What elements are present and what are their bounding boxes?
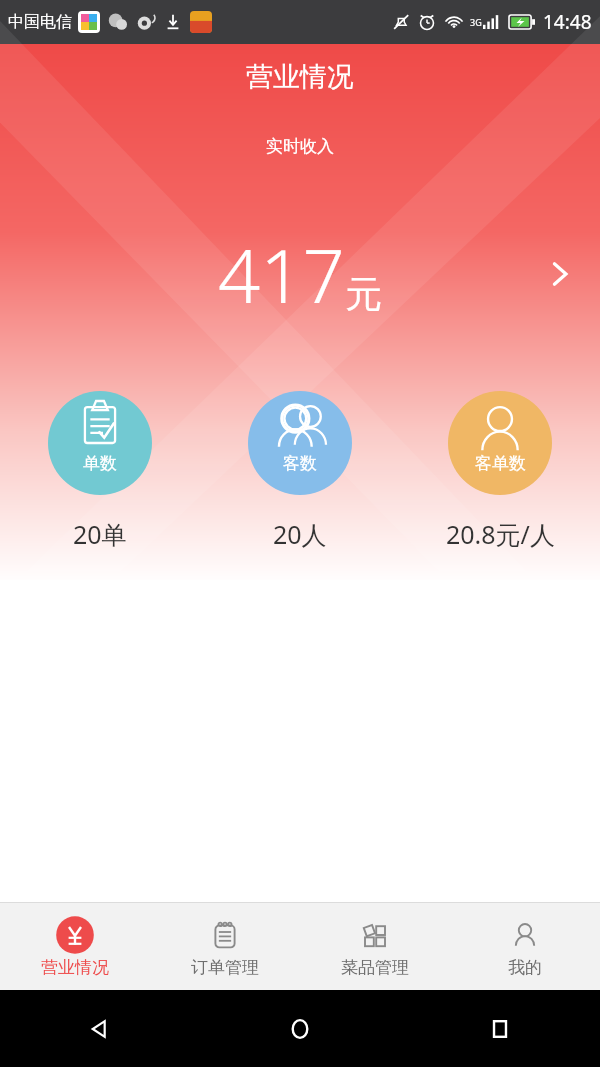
staticText: 20.8元/人 <box>446 517 555 551</box>
staticText: 元 <box>345 271 382 318</box>
other: 查看详情 <box>542 256 578 292</box>
staticText: 单数 <box>83 453 117 474</box>
staticText: 菜品管理 <box>341 957 409 978</box>
staticText: 14:48 <box>543 9 592 35</box>
staticText: 我的 <box>508 957 542 978</box>
staticText: 实时收入 <box>0 136 600 157</box>
staticText: 营业情况 <box>41 957 109 978</box>
button[interactable]: Recent apps <box>400 990 600 1067</box>
button[interactable]: 单数 <box>0 391 200 551</box>
staticText: 20单 <box>73 517 127 551</box>
button[interactable]: 我的 <box>450 903 600 990</box>
button[interactable]: 客单数 <box>400 391 600 551</box>
button[interactable]: 417 <box>0 219 600 329</box>
staticText: 营业情况 <box>0 60 600 94</box>
button[interactable]: 营业情况 <box>0 903 150 990</box>
button[interactable]: Back <box>0 990 200 1067</box>
staticText: 订单管理 <box>191 957 259 978</box>
button[interactable]: 菜品管理 <box>300 903 450 990</box>
staticText: 3G <box>470 16 482 28</box>
staticText: 20人 <box>273 517 327 551</box>
button[interactable]: 客数 <box>200 391 400 551</box>
staticText: 客数 <box>283 453 317 474</box>
button[interactable]: Home <box>200 990 400 1067</box>
staticText: 客单数 <box>475 453 526 474</box>
staticText: 417 <box>218 224 345 325</box>
button[interactable]: 订单管理 <box>150 903 300 990</box>
staticText: 中国电信 <box>8 12 72 32</box>
